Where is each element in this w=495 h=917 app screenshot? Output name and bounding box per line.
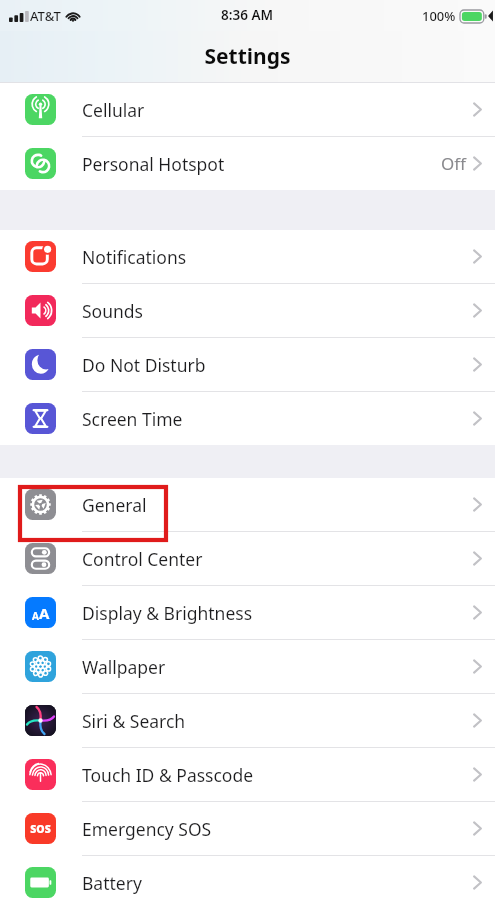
button[interactable]: Sounds: [0, 284, 495, 338]
button[interactable]: Notifications: [0, 230, 495, 284]
staticText: Siri & Search: [82, 709, 186, 733]
button[interactable]: Personal Hotspot: [0, 137, 495, 190]
staticText: A: [32, 609, 39, 623]
staticText: 100%: [422, 7, 456, 25]
staticText: Display & Brightness: [82, 601, 253, 625]
staticText: Do Not Disturb: [82, 353, 206, 377]
staticText: SOS: [30, 822, 51, 836]
staticText: Control Center: [82, 547, 203, 571]
button[interactable]: General: [0, 478, 495, 532]
staticText: Settings: [204, 42, 291, 71]
staticText: Emergency SOS: [82, 817, 212, 841]
staticText: Screen Time: [82, 407, 183, 431]
staticText: Sounds: [82, 299, 143, 323]
button[interactable]: Cellular: [0, 83, 495, 137]
staticText: Wallpaper: [82, 655, 166, 679]
staticText: Touch ID & Passcode: [82, 763, 254, 787]
button[interactable]: SOS: [0, 802, 495, 856]
staticText: Notifications: [82, 245, 187, 269]
staticText: General: [82, 493, 147, 517]
button[interactable]: Siri & Search: [0, 694, 495, 748]
button[interactable]: Wallpaper: [0, 640, 495, 694]
staticText: Personal Hotspot: [82, 152, 225, 176]
staticText: Battery: [82, 871, 142, 895]
staticText: AT&T: [30, 7, 61, 25]
button[interactable]: Touch ID & Passcode: [0, 748, 495, 802]
staticText: Cellular: [82, 98, 145, 122]
staticText: A: [39, 603, 50, 623]
staticText: 8:36 AM: [221, 6, 274, 24]
button[interactable]: A: [0, 586, 495, 640]
button[interactable]: Screen Time: [0, 392, 495, 445]
button[interactable]: Do Not Disturb: [0, 338, 495, 392]
staticText: Off: [441, 152, 466, 175]
button[interactable]: Battery: [0, 856, 495, 909]
button[interactable]: Control Center: [0, 532, 495, 586]
